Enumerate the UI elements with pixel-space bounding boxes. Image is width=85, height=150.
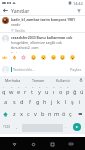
button[interactable]: Back [9, 139, 19, 149]
button[interactable]: Voice input [76, 76, 85, 84]
button[interactable]: Emoji [60, 55, 65, 60]
button[interactable]: b [39, 108, 46, 120]
staticText: Yanitla [15, 29, 25, 32]
button[interactable]: a [2, 96, 10, 108]
button[interactable]: ğ [71, 84, 78, 96]
staticText: f [29, 98, 31, 106]
button[interactable]: Emoji [70, 55, 75, 60]
staticText: Merhaba [5, 78, 21, 83]
staticText: 0 [67, 85, 69, 88]
staticText: cezadsfer2033 Bunu kullanman cok [11, 35, 73, 40]
button[interactable]: f [26, 96, 34, 108]
button[interactable]: j [48, 96, 55, 108]
staticText: vardir [11, 22, 21, 27]
button[interactable]: Keyboard [66, 139, 76, 149]
button[interactable]: h [41, 96, 48, 108]
button[interactable]: 2 [8, 84, 15, 96]
button[interactable]: d [18, 96, 26, 108]
staticText: Paylasim... [11, 52, 27, 53]
button[interactable]: k [55, 96, 62, 108]
button[interactable]: Blossom emoji [21, 55, 26, 60]
staticText: m [54, 110, 60, 118]
button[interactable]: Kullanici [51, 76, 76, 84]
staticText: tbnushost2 .com [11, 45, 39, 50]
button[interactable]: c [25, 108, 32, 120]
button[interactable]: 5 [29, 84, 36, 96]
button[interactable]: , [12, 120, 22, 134]
staticText: Yanıtlar [11, 7, 30, 14]
staticText: Tamam [32, 78, 45, 83]
button[interactable]: Send [69, 120, 85, 134]
staticText: 5 [32, 85, 34, 88]
button[interactable]: ö [60, 108, 67, 120]
staticText: h [43, 98, 47, 106]
staticText: z [13, 110, 16, 118]
button[interactable]: 1 [0, 84, 8, 96]
staticText: kadir_kl_zambar tarim kompost 1981 [11, 17, 76, 22]
staticText: j [51, 98, 53, 106]
button[interactable]: Crown emoji [2, 55, 7, 60]
staticText: 6 [39, 85, 41, 88]
staticText: 1 [3, 85, 5, 88]
button[interactable]: n [46, 108, 53, 120]
button[interactable]: v [32, 108, 39, 120]
button[interactable]: g [34, 96, 41, 108]
staticText: w [9, 88, 14, 96]
staticText: 4 [25, 85, 27, 88]
staticText: e [17, 88, 21, 96]
staticText: x [20, 110, 23, 118]
button[interactable]: l [62, 96, 69, 108]
staticText: ğ [73, 88, 77, 96]
staticText: ı [53, 88, 55, 96]
button[interactable]: Recents [47, 139, 57, 149]
staticText: d [20, 98, 24, 106]
staticText: c [27, 110, 30, 118]
button[interactable]: Emoji [51, 55, 56, 60]
staticText: Paylas [70, 67, 82, 72]
button[interactable]: Emoji [31, 55, 36, 60]
button[interactable]: Home [28, 139, 38, 149]
staticText: o [59, 88, 63, 96]
staticText: 14:44 [73, 1, 83, 6]
button[interactable]: Fire emoji [12, 55, 17, 60]
button[interactable]: ?123 [0, 120, 12, 134]
button[interactable]: ş [69, 96, 76, 108]
staticText: 7 [46, 85, 48, 88]
staticText: u [45, 88, 49, 96]
button[interactable]: 8 [50, 84, 57, 96]
staticText: ş [71, 98, 74, 106]
button[interactable]: 9 [57, 84, 64, 96]
staticText: hosgeldim, ellerinize saglik cok [11, 40, 62, 45]
staticText: n [48, 110, 52, 118]
button[interactable]: Merhaba [0, 76, 26, 84]
staticText: 8 [53, 85, 55, 88]
button[interactable]: Shift [0, 108, 11, 120]
button[interactable]: ç [67, 108, 74, 120]
staticText: v [34, 110, 37, 118]
button[interactable]: z [11, 108, 18, 120]
button[interactable]: 0 [64, 84, 71, 96]
button[interactable]: 6 [36, 84, 43, 96]
staticText: q [2, 88, 6, 96]
button[interactable]: s [10, 96, 18, 108]
staticText: ç [69, 110, 72, 118]
button[interactable]: 4 [22, 84, 29, 96]
button[interactable]: Backspace [74, 108, 85, 120]
staticText: y [38, 88, 41, 96]
button[interactable]: Back [0, 6, 11, 15]
button[interactable]: Emoji [41, 55, 46, 60]
staticText: Kullanici [56, 78, 71, 83]
button[interactable]: ü [78, 84, 85, 96]
button[interactable]: x [18, 108, 25, 120]
button[interactable]: Filter [73, 6, 85, 15]
button[interactable]: Tamam [26, 76, 51, 84]
button[interactable]: i [76, 96, 83, 108]
button[interactable]: m [53, 108, 60, 120]
button[interactable]: Paylas [69, 66, 83, 73]
button[interactable]: 7 [43, 84, 50, 96]
staticText: k [57, 98, 60, 106]
staticText: s [13, 98, 16, 106]
button[interactable]: 3 [15, 84, 22, 96]
